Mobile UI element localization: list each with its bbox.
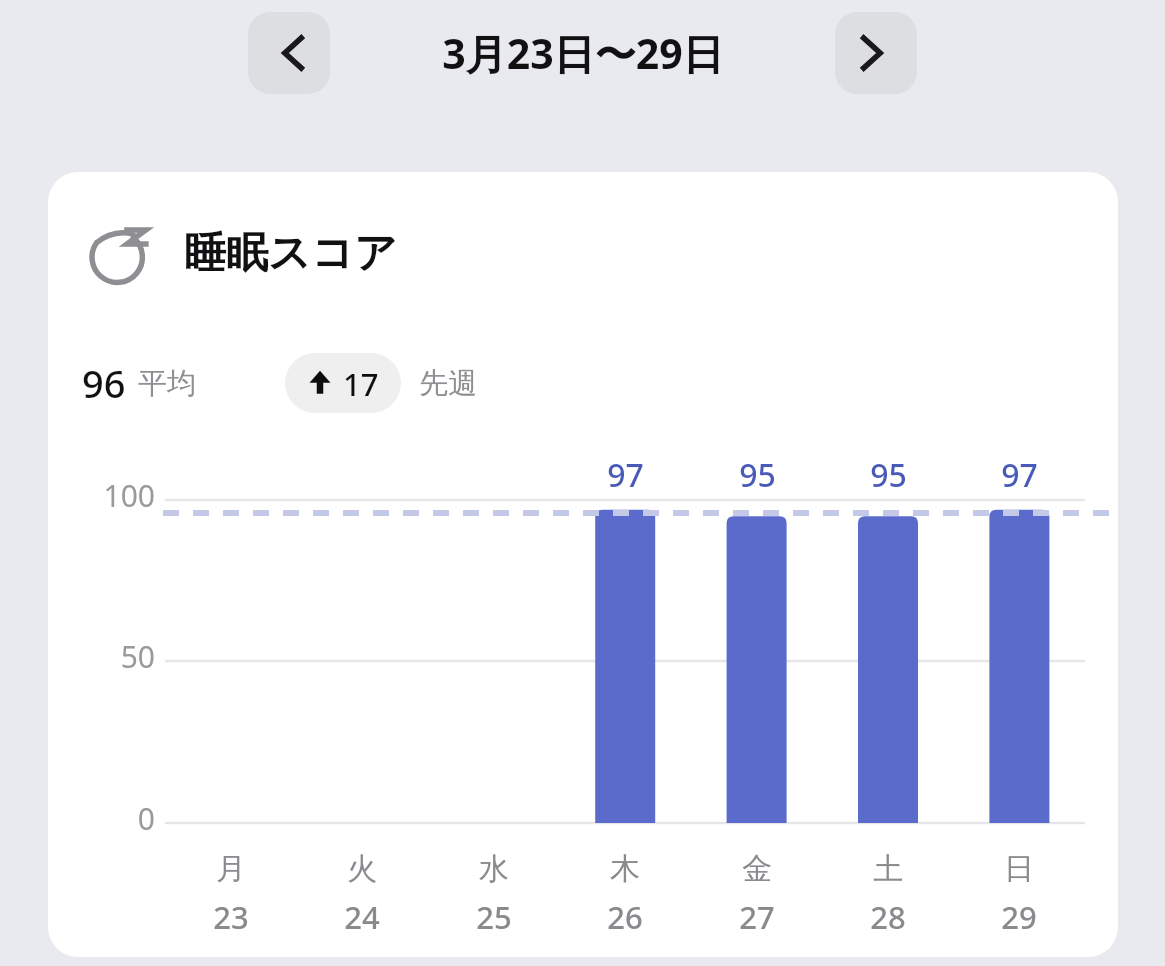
staticText: 97 xyxy=(1001,453,1038,497)
button[interactable]: Previous week xyxy=(248,12,330,94)
staticText: 23 xyxy=(213,896,249,938)
staticText: 平均 xyxy=(138,365,196,402)
staticText: 17 xyxy=(343,363,379,403)
staticText: 木 xyxy=(610,850,640,888)
staticText: 先週 xyxy=(419,365,477,402)
staticText: 28 xyxy=(870,896,906,938)
button[interactable]: 睡眠スコア xyxy=(48,172,1118,957)
staticText: 29 xyxy=(1001,896,1037,938)
staticText: 月 xyxy=(216,850,246,888)
staticText: 24 xyxy=(344,896,380,938)
staticText: 土 xyxy=(873,850,903,888)
button[interactable]: 17 xyxy=(285,353,401,413)
staticText: 95 xyxy=(870,453,907,497)
staticText: 25 xyxy=(476,896,512,938)
staticText: 火 xyxy=(347,850,377,888)
staticText: 金 xyxy=(742,850,772,888)
staticText: 100 xyxy=(103,475,155,516)
staticText: 95 xyxy=(739,453,776,497)
button[interactable]: Next week xyxy=(835,12,917,94)
staticText: 0 xyxy=(137,798,155,839)
staticText: 睡眠スコア xyxy=(184,227,397,280)
staticText: 50 xyxy=(120,636,155,677)
staticText: 96 xyxy=(82,357,126,409)
staticText: 97 xyxy=(607,453,644,497)
staticText: 26 xyxy=(607,896,643,938)
staticText: 27 xyxy=(739,896,775,938)
staticText: 3月23日〜29日 xyxy=(442,25,724,81)
staticText: 水 xyxy=(479,850,509,888)
staticText: 日 xyxy=(1004,850,1034,888)
